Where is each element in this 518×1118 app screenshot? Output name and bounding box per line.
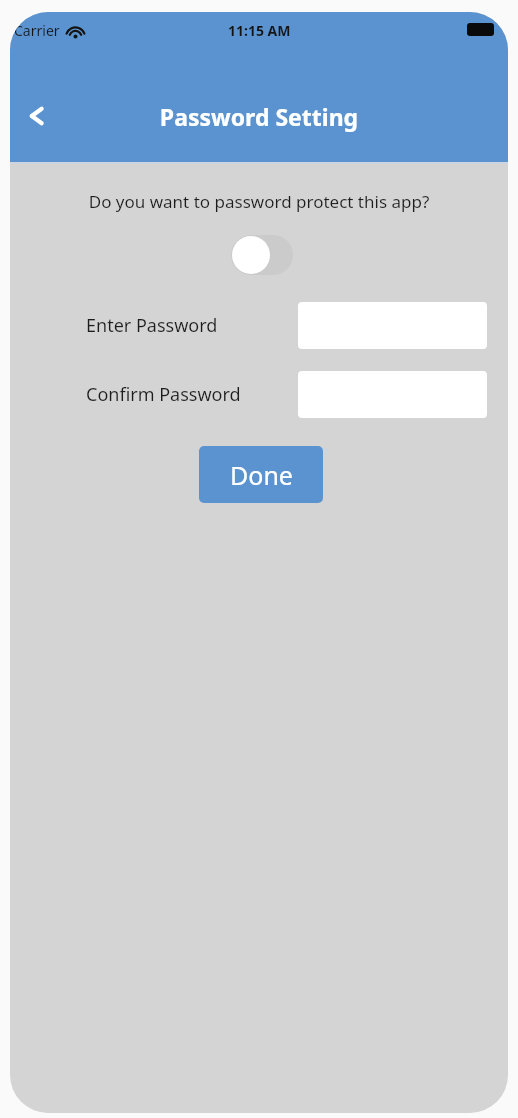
- staticText: 11:15 AM: [228, 21, 291, 40]
- staticText: Enter Password: [86, 313, 218, 338]
- staticText: Do you want to password protect this app…: [10, 190, 508, 213]
- button[interactable]: Done: [199, 446, 323, 503]
- staticText: Done: [230, 458, 293, 492]
- staticText: Password Setting: [10, 101, 508, 132]
- staticText: Carrier: [14, 21, 60, 40]
- button[interactable]: Back: [10, 90, 64, 142]
- button[interactable]: Password protection toggle: [231, 235, 293, 275]
- staticText: Confirm Password: [86, 382, 241, 407]
